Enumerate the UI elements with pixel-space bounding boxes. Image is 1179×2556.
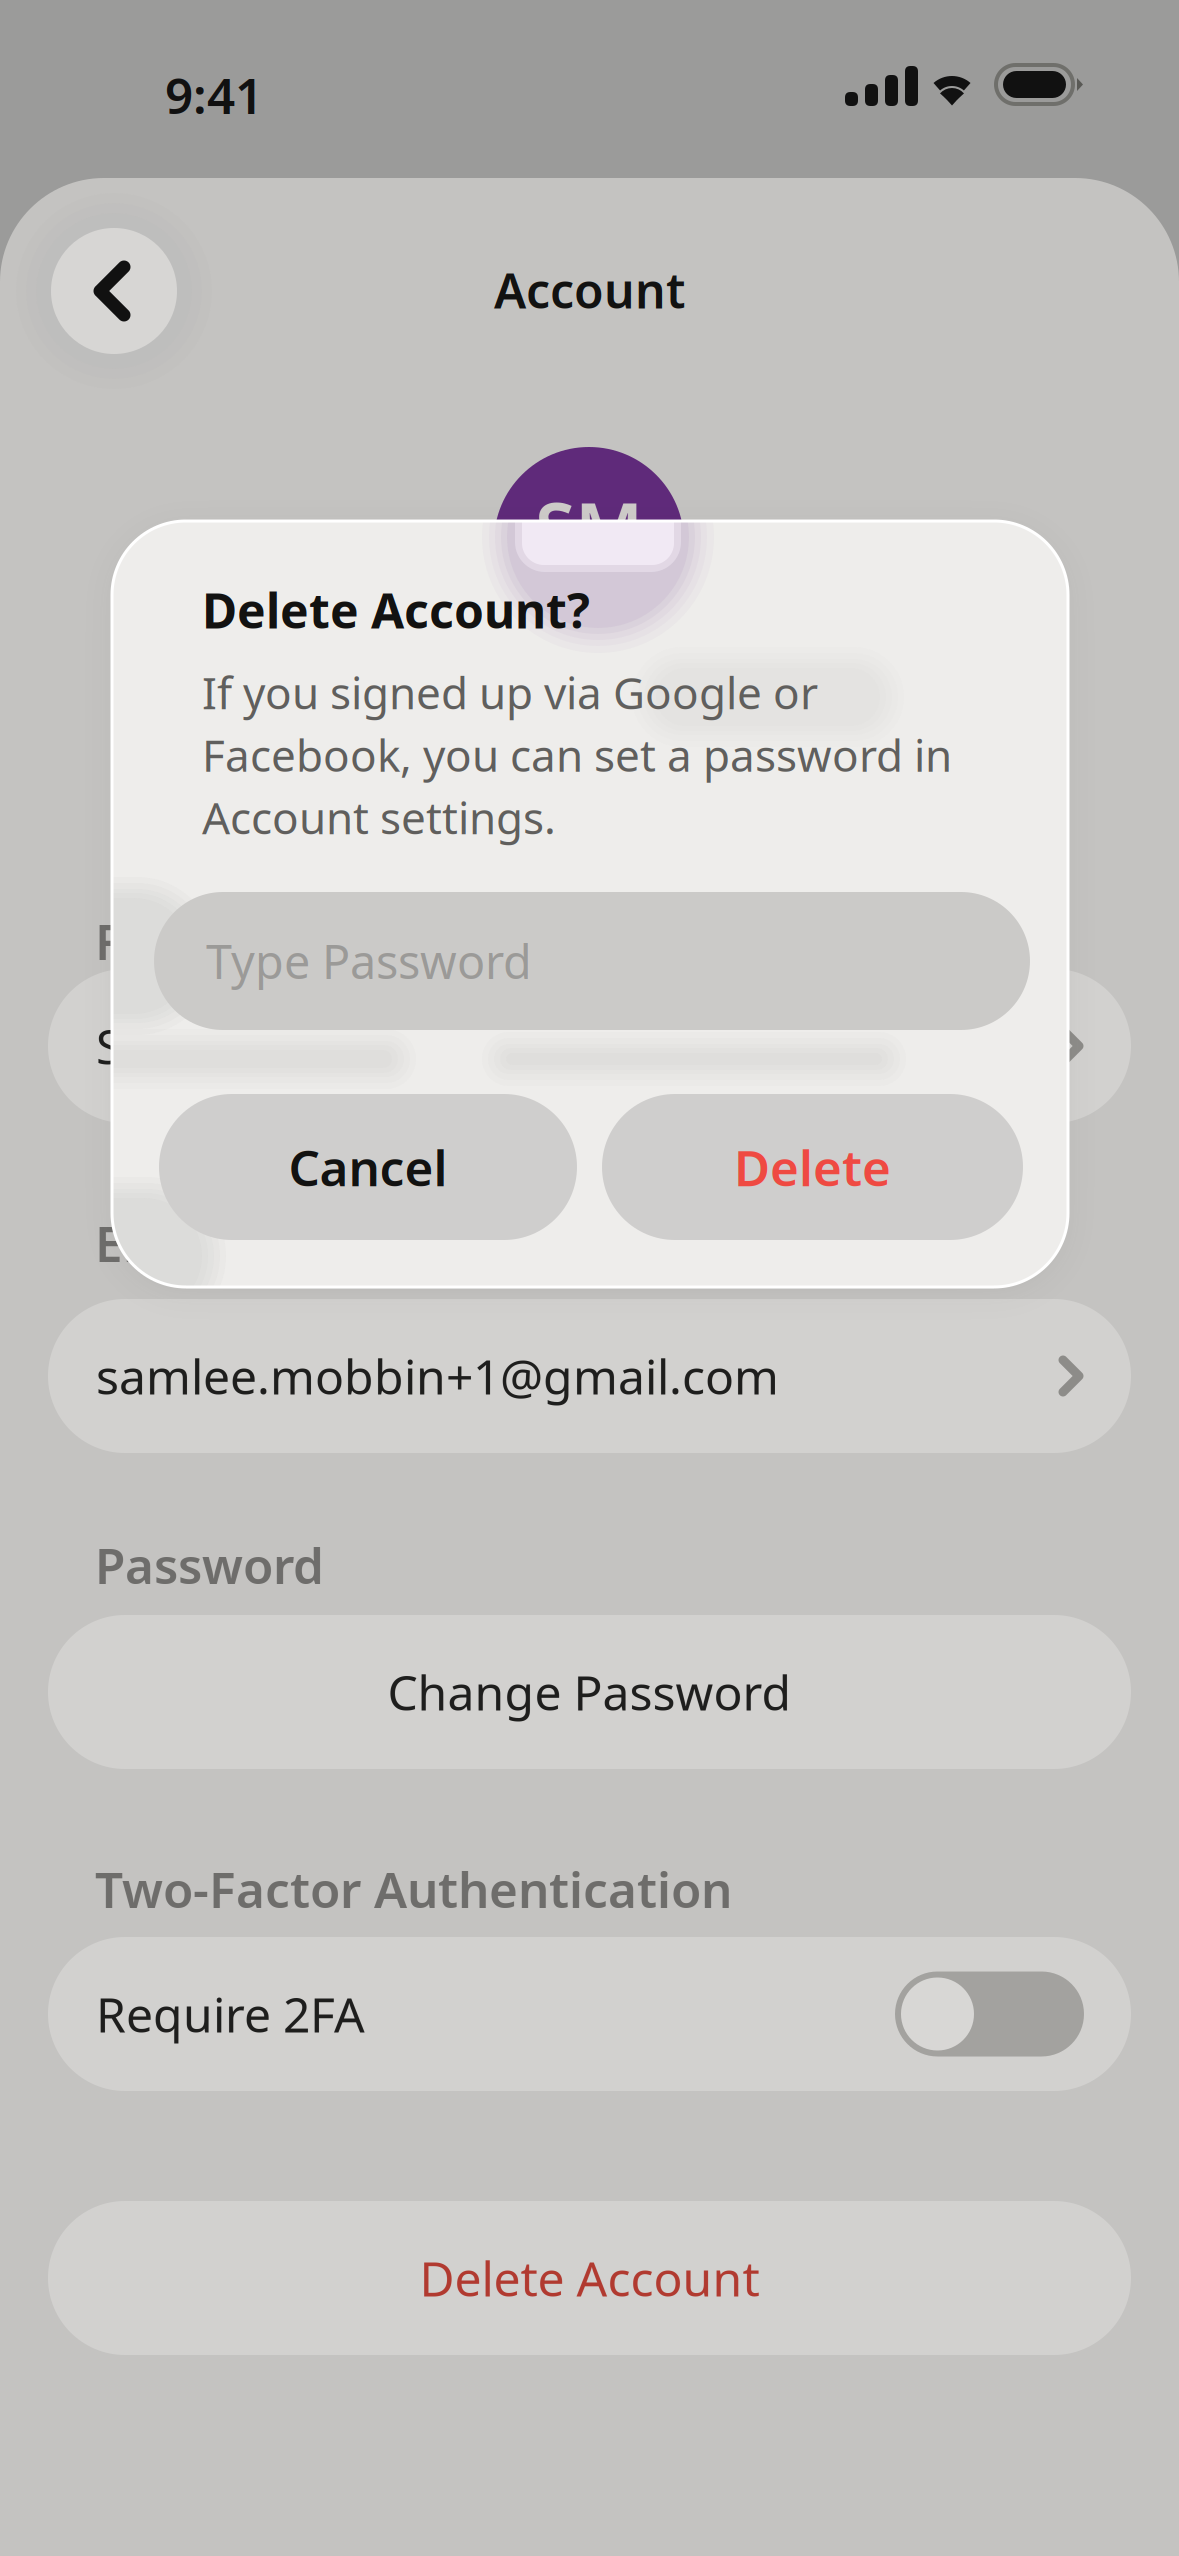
- staticText: Delete Account?: [202, 578, 590, 642]
- button[interactable]: Delete: [602, 1094, 1023, 1240]
- staticText: Account settings.: [202, 788, 556, 846]
- staticText: samlee.mobbin+1@gmail.com: [96, 1344, 779, 1408]
- button[interactable]: Back: [51, 228, 177, 354]
- button[interactable]: Require 2FA: [48, 1937, 1131, 2091]
- staticText: Sam Lee: [96, 1014, 285, 1078]
- button[interactable]: Change Password: [48, 1615, 1131, 1769]
- staticText: If you signed up via Google or: [202, 663, 818, 721]
- staticText: Email: [95, 1210, 227, 1275]
- button[interactable]: Cancel: [159, 1094, 577, 1240]
- staticText: Account: [494, 258, 685, 322]
- button[interactable]: Delete Account: [48, 2201, 1131, 2355]
- staticText: 9:41: [165, 62, 263, 127]
- staticText: Type Password: [206, 930, 532, 992]
- staticText: Require 2FA: [96, 1982, 365, 2046]
- staticText: Delete: [734, 1134, 891, 1200]
- staticText: Facebook, you can set a password in: [202, 725, 952, 784]
- button[interactable]: Type Password: [154, 892, 1030, 1030]
- staticText: Delete Account: [419, 2246, 759, 2310]
- staticText: Password: [95, 1532, 324, 1597]
- staticText: Cancel: [288, 1134, 447, 1200]
- staticText: Change Password: [387, 1660, 791, 1724]
- staticText: Two-Factor Authentication: [95, 1856, 732, 1921]
- button[interactable]: Sam Lee: [48, 969, 1131, 1123]
- staticText: SM: [535, 479, 643, 577]
- button[interactable]: samlee.mobbin+1@gmail.com: [48, 1299, 1131, 1453]
- staticText: Full Name: [95, 908, 338, 973]
